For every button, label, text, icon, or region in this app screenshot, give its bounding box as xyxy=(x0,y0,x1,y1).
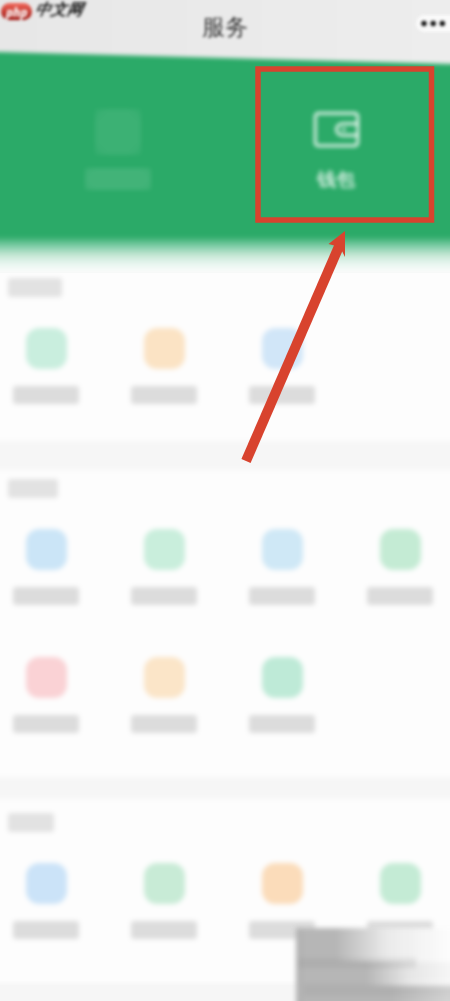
staticText: 钱包 xyxy=(317,168,355,192)
staticText: 中文网 xyxy=(34,0,82,20)
button[interactable]: Service item xyxy=(360,529,440,605)
button[interactable]: Service item xyxy=(242,657,322,733)
button[interactable]: Service item xyxy=(6,657,86,733)
button[interactable]: Service item xyxy=(242,328,322,404)
button[interactable]: Service item xyxy=(124,529,204,605)
button[interactable]: Service item xyxy=(360,863,440,939)
button[interactable]: More options xyxy=(416,15,450,32)
button[interactable]: Service item xyxy=(6,328,86,404)
button[interactable]: Service item xyxy=(124,657,204,733)
button[interactable]: Service item xyxy=(242,863,322,939)
button[interactable]: Service item xyxy=(242,529,322,605)
staticText: php xyxy=(6,4,28,20)
button[interactable]: Service item xyxy=(124,328,204,404)
button[interactable]: Service item xyxy=(6,529,86,605)
button[interactable]: Service item xyxy=(6,863,86,939)
button[interactable]: Service item xyxy=(124,863,204,939)
button[interactable]: Money xyxy=(78,109,158,190)
button[interactable]: 钱包 xyxy=(296,112,376,192)
staticText: 服务 xyxy=(202,13,248,42)
